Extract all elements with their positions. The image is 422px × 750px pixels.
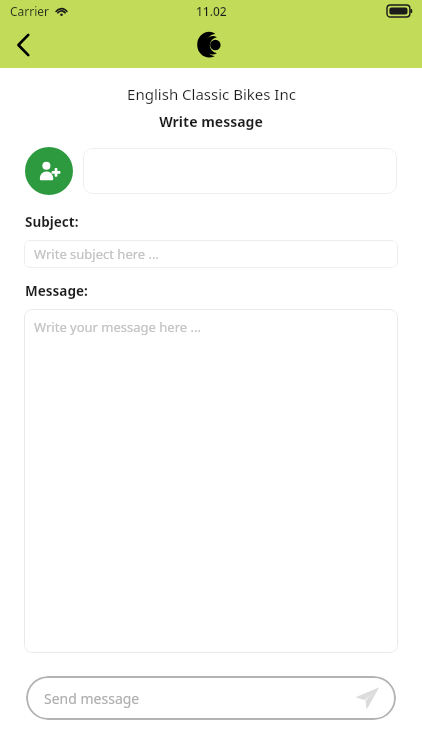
button[interactable]: Write your message here ... xyxy=(24,309,398,653)
staticText: Subject: xyxy=(25,213,79,231)
button[interactable] xyxy=(83,148,397,194)
button[interactable]: App logo xyxy=(194,28,228,62)
staticText: 11.02 xyxy=(196,3,227,19)
button[interactable]: Add recipient xyxy=(25,147,73,195)
other: Send xyxy=(354,685,380,711)
staticText: Message: xyxy=(25,282,88,300)
staticText: Write message xyxy=(159,112,263,131)
staticText: Write your message here ... xyxy=(34,318,201,336)
staticText: Send message xyxy=(44,689,354,708)
button[interactable]: Send message xyxy=(26,676,396,720)
button[interactable]: Write subject here ... xyxy=(24,240,398,268)
staticText: Write subject here ... xyxy=(34,245,159,263)
staticText: English Classic Bikes Inc xyxy=(127,84,296,104)
button[interactable]: Back xyxy=(0,22,46,68)
staticText: Carrier xyxy=(10,3,50,19)
